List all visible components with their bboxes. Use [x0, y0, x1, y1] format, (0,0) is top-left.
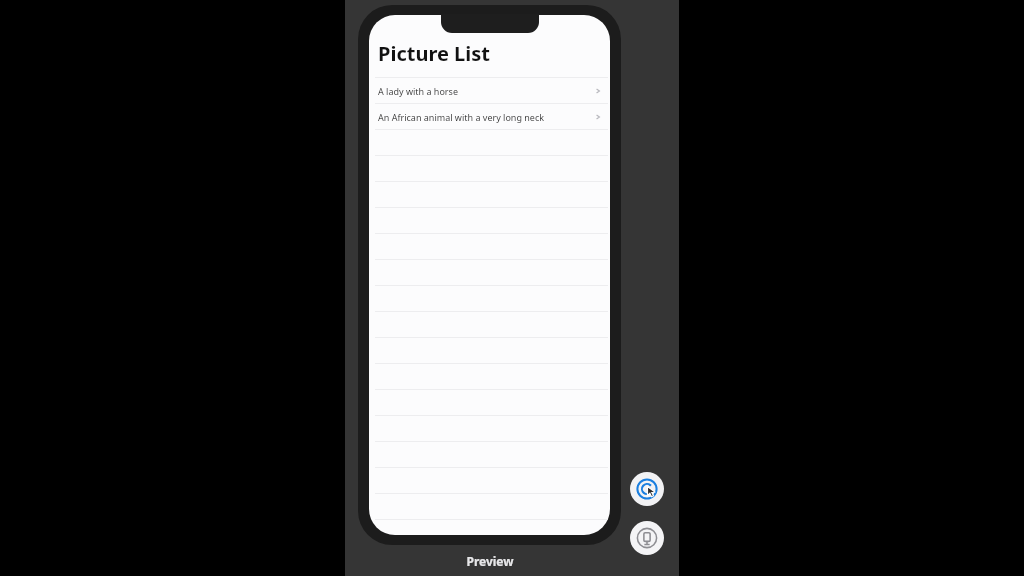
staticText: An African animal with a very long neck: [378, 111, 594, 123]
button[interactable]: Select interactive preview: [630, 472, 664, 506]
button[interactable]: A lady with a horse: [369, 78, 610, 103]
button[interactable]: Run on device: [630, 521, 664, 555]
staticText: Preview: [466, 553, 514, 569]
staticText: A lady with a horse: [378, 85, 594, 97]
staticText: Picture List: [378, 40, 490, 67]
button[interactable]: An African animal with a very long neck: [369, 104, 610, 129]
